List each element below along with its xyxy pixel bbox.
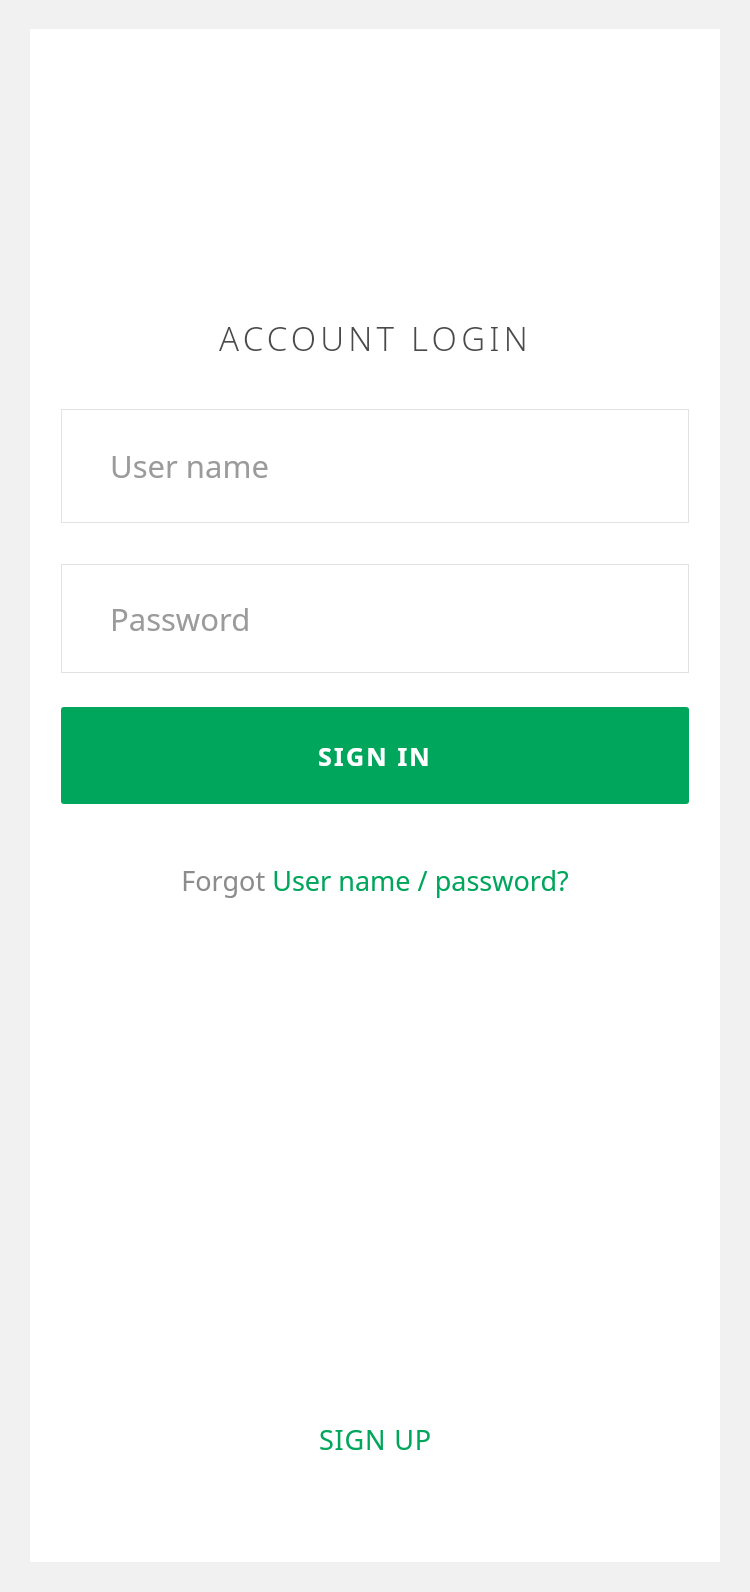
staticText: Password: [110, 598, 251, 640]
button[interactable]: SIGN IN: [61, 707, 689, 804]
staticText: SIGN IN: [318, 739, 432, 773]
button[interactable]: SIGN UP: [303, 1413, 448, 1466]
staticText: Forgot User name / password?: [181, 862, 569, 899]
button[interactable]: Forgot User name / password?: [169, 858, 581, 903]
button[interactable]: User name: [61, 409, 689, 523]
staticText: ACCOUNT LOGIN: [219, 316, 532, 361]
staticText: SIGN UP: [319, 1421, 432, 1458]
button[interactable]: Password: [61, 564, 689, 673]
staticText: User name: [110, 445, 269, 487]
